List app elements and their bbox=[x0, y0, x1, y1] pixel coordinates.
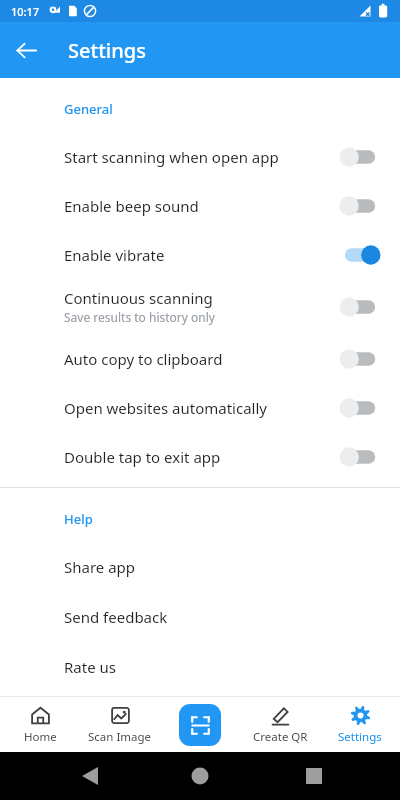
button[interactable]: Start scanning when open app bbox=[0, 132, 400, 181]
button[interactable]: Open websites automatically bbox=[0, 383, 400, 432]
staticText: Save results to history only bbox=[64, 309, 215, 325]
staticText: General bbox=[64, 100, 113, 118]
staticText: Help bbox=[64, 510, 93, 528]
staticText: Enable beep sound bbox=[64, 196, 199, 216]
staticText: Send feedback bbox=[64, 607, 168, 627]
staticText: Home bbox=[24, 729, 57, 745]
button[interactable]: Double tap to exit app bbox=[0, 432, 400, 481]
button[interactable]: Rate us bbox=[0, 642, 400, 692]
staticText: Scan Image bbox=[88, 729, 152, 745]
button[interactable]: Back bbox=[2, 26, 50, 74]
button[interactable]: Create QR bbox=[240, 697, 320, 752]
staticText: Enable vibrate bbox=[64, 245, 165, 265]
staticText: Share app bbox=[64, 557, 136, 577]
button[interactable]: Home bbox=[0, 697, 80, 752]
button[interactable]: Scan Image bbox=[80, 697, 160, 752]
staticText: Settings bbox=[338, 729, 382, 745]
staticText: Continuous scanning bbox=[64, 288, 213, 308]
button[interactable]: Share app bbox=[0, 542, 400, 592]
button[interactable]: Auto copy to clipboard bbox=[0, 334, 400, 383]
button[interactable]: Send feedback bbox=[0, 592, 400, 642]
staticText: Auto copy to clipboard bbox=[64, 349, 223, 369]
staticText: Open websites automatically bbox=[64, 398, 267, 418]
button[interactable]: Continuous scanning bbox=[0, 279, 400, 334]
staticText: Settings bbox=[68, 37, 146, 64]
button[interactable]: Scan bbox=[179, 704, 221, 746]
staticText: Rate us bbox=[64, 657, 116, 677]
staticText: Double tap to exit app bbox=[64, 447, 221, 467]
staticText: Start scanning when open app bbox=[64, 147, 279, 167]
button[interactable]: Settings bbox=[320, 697, 400, 752]
button[interactable]: Enable beep sound bbox=[0, 181, 400, 230]
button[interactable]: Enable vibrate bbox=[0, 230, 400, 279]
staticText: 10:17 bbox=[11, 4, 40, 19]
staticText: Create QR bbox=[253, 729, 308, 745]
